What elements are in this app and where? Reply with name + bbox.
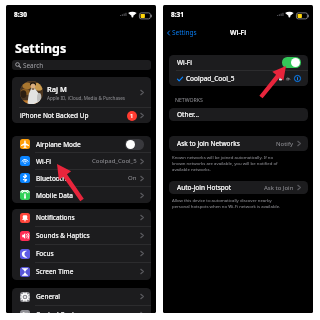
button[interactable]: Notifications [12, 209, 151, 227]
button[interactable]: More Info [294, 75, 301, 82]
staticText: Sounds & Haptics [36, 231, 90, 240]
staticText: On [128, 174, 137, 182]
staticText: Other... [177, 110, 199, 119]
button[interactable]: Screen Time [12, 263, 151, 280]
staticText: Mobile Data [36, 191, 73, 200]
button[interactable]: Search [12, 60, 151, 70]
staticText: Wi-Fi [36, 157, 51, 166]
staticText: Screen Time [36, 267, 74, 276]
button[interactable]: Control Centre [12, 306, 151, 313]
staticText: 1 [130, 112, 134, 120]
staticText: Ask to Join Networks [177, 139, 240, 148]
staticText: Airplane Mode [36, 140, 81, 149]
staticText: Search [23, 61, 44, 70]
button[interactable]: Sounds & Haptics [12, 227, 151, 245]
staticText: Allow this device to automatically disco… [172, 197, 281, 209]
button[interactable]: Wi-Fi [12, 153, 151, 170]
button[interactable]: Bluetooth [12, 170, 151, 187]
button[interactable]: Other... [169, 108, 308, 121]
staticText: 8:31 [171, 10, 184, 19]
staticText: Known networks will be joined automatica… [172, 154, 278, 172]
button[interactable]: Coolpad_Cool_5 [169, 71, 308, 86]
button[interactable]: Wi-Fi [169, 55, 308, 71]
staticText: Settings [15, 40, 67, 57]
staticText: Ask to Join [264, 184, 294, 192]
staticText: Wi-Fi [177, 58, 192, 67]
staticText: iPhone Not Backed Up [20, 111, 89, 120]
button[interactable]: Settings [163, 27, 201, 38]
staticText: 8:30 [14, 10, 27, 19]
staticText: NETWORKS [175, 96, 203, 103]
button[interactable]: Airplane Mode [12, 136, 151, 153]
button[interactable]: iPhone Not Backed Up [12, 108, 151, 123]
staticText: Raj M [47, 84, 67, 94]
staticText: General [36, 292, 60, 301]
staticText: Auto-Join Hotspot [177, 183, 232, 192]
staticText: Bluetooth [36, 174, 67, 183]
staticText: Coolpad_Cool_5 [92, 157, 137, 165]
staticText: Wi-Fi [230, 28, 247, 37]
staticText: Control Centre [36, 310, 81, 313]
button[interactable]: Raj M [12, 77, 151, 107]
staticText: Notify [276, 140, 294, 148]
button[interactable]: Ask to Join Networks [169, 136, 308, 151]
staticText: Settings [172, 28, 197, 37]
button[interactable]: Auto-Join Hotspot [169, 181, 308, 194]
staticText: Coolpad_Cool_5 [186, 74, 235, 83]
staticText: Focus [36, 249, 54, 258]
staticText: Apple ID, iCloud, Media & Purchases [47, 95, 125, 101]
staticText: Notifications [36, 213, 75, 222]
button[interactable]: General [12, 288, 151, 306]
other: Secured network [278, 76, 283, 81]
button[interactable]: Focus [12, 245, 151, 263]
button[interactable]: Mobile Data [12, 187, 151, 203]
